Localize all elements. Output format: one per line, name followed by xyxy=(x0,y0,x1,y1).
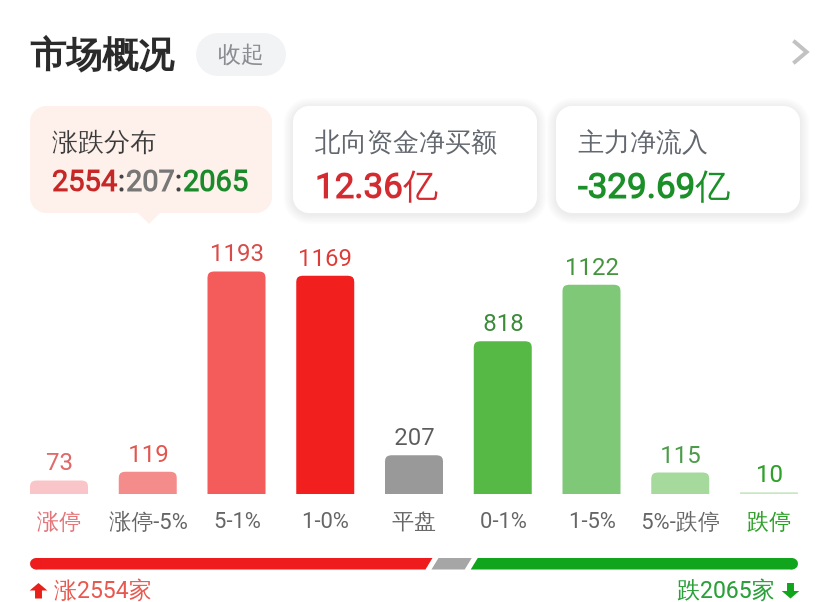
staticText: 2554 xyxy=(52,164,118,198)
staticText: 主力净流入 xyxy=(578,126,708,159)
staticText: 北向资金净买额 xyxy=(315,126,497,159)
button[interactable]: 1-0% xyxy=(260,508,390,534)
button[interactable]: 涨跌分布 xyxy=(30,106,272,213)
staticText: 1-0% xyxy=(302,508,349,534)
staticText: : xyxy=(118,164,126,198)
button[interactable]: 跌2065家 xyxy=(677,576,801,602)
staticText: 1122 xyxy=(565,253,619,281)
button[interactable]: 涨停 xyxy=(0,508,124,536)
button[interactable]: 平盘 xyxy=(349,508,479,536)
staticText: 涨停-5% xyxy=(109,508,188,536)
button[interactable]: 涨2554家 xyxy=(28,576,152,602)
staticText: 0-1% xyxy=(480,508,527,534)
staticText: 收起 xyxy=(218,40,264,69)
staticText: 2065 xyxy=(183,164,249,198)
staticText: 818 xyxy=(483,309,524,337)
staticText: 207 xyxy=(394,423,435,451)
staticText: 涨2554家 xyxy=(54,576,152,602)
staticText: 10 xyxy=(756,460,783,488)
staticText: 涨停 xyxy=(37,508,81,536)
staticText: 115 xyxy=(660,441,701,469)
button[interactable]: 北向资金净买额 xyxy=(293,106,537,213)
staticText: 119 xyxy=(128,440,169,468)
staticText: 涨跌分布 xyxy=(52,126,156,159)
staticText: 73 xyxy=(46,448,73,476)
staticText: 平盘 xyxy=(392,508,436,536)
staticText: 12.36亿 xyxy=(315,164,438,208)
staticText: 跌2065家 xyxy=(677,576,775,602)
button[interactable]: 主力净流入 xyxy=(556,106,800,213)
button[interactable]: 跌停 xyxy=(704,508,828,536)
button[interactable]: 5%-跌停 xyxy=(615,508,745,536)
staticText: -329.69亿 xyxy=(578,164,731,208)
staticText: 1193 xyxy=(210,239,264,267)
staticText: 市场概况 xyxy=(30,32,174,77)
staticText: 1169 xyxy=(298,244,352,272)
button[interactable]: 0-1% xyxy=(438,508,568,534)
button[interactable]: 收起 xyxy=(196,33,286,76)
staticText: 5-1% xyxy=(214,508,261,534)
button[interactable]: 1-5% xyxy=(527,508,657,534)
staticText: 5%-跌停 xyxy=(641,508,720,536)
staticText: 207 xyxy=(126,164,175,198)
staticText: : xyxy=(175,164,183,198)
staticText: 1-5% xyxy=(569,508,616,534)
button[interactable]: 5-1% xyxy=(172,508,302,534)
button[interactable]: 涨停-5% xyxy=(83,508,213,536)
staticText: 跌停 xyxy=(747,508,791,536)
button[interactable]: 查看更多 market overview details xyxy=(772,24,828,80)
